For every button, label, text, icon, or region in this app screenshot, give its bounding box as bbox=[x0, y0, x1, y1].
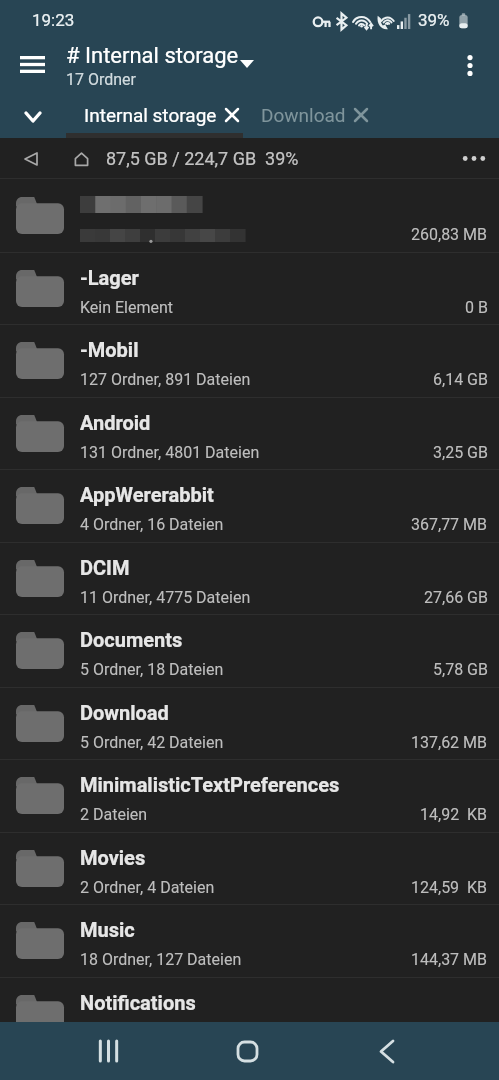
staticText: Download bbox=[261, 104, 346, 126]
button[interactable]: Internal storage bbox=[66, 96, 243, 138]
staticText: 18 Ordner, 127 Dateien bbox=[80, 950, 242, 969]
button[interactable]: Up one level bbox=[6, 138, 56, 179]
staticText: 137,62 MB bbox=[411, 733, 488, 752]
staticText: -Lager bbox=[80, 266, 139, 289]
button[interactable]: Android bbox=[0, 397, 499, 470]
staticText: 2 Dateien bbox=[80, 805, 148, 824]
staticText: 11 Ordner, 4775 Dateien bbox=[80, 588, 251, 607]
staticText: -Mobil bbox=[80, 338, 139, 361]
staticText: 131 Ordner, 4801 Dateien bbox=[80, 443, 260, 462]
staticText: 14,92 KB bbox=[420, 805, 488, 824]
button[interactable]: Documents bbox=[0, 614, 499, 687]
staticText: 6,14 GB bbox=[433, 370, 488, 389]
button[interactable]: Download bbox=[0, 687, 499, 760]
button[interactable]: 260,83 MB bbox=[0, 179, 499, 252]
staticText: 39% bbox=[418, 10, 450, 30]
button[interactable]: Overflow menu bbox=[449, 138, 499, 179]
button[interactable]: DCIM bbox=[0, 542, 499, 615]
staticText: # Internal storage bbox=[66, 43, 239, 69]
button[interactable]: Back bbox=[337, 1022, 437, 1080]
staticText: 0 B bbox=[465, 298, 488, 317]
button[interactable]: MinimalisticTextPreferences bbox=[0, 759, 499, 832]
staticText: Music bbox=[80, 918, 135, 941]
button[interactable]: Recent apps bbox=[58, 1022, 158, 1080]
staticText: 144,37 MB bbox=[411, 950, 488, 969]
staticText: 5,78 GB bbox=[433, 660, 488, 679]
staticText: 4 Ordner, 16 Dateien bbox=[80, 515, 224, 534]
button[interactable]: Show tab list bbox=[0, 96, 66, 138]
staticText: 367,77 MB bbox=[411, 515, 488, 534]
staticText: Internal storage bbox=[84, 104, 217, 126]
staticText: 19:23 bbox=[32, 10, 75, 30]
staticText: Download bbox=[80, 701, 169, 724]
button[interactable]: Movies bbox=[0, 832, 499, 905]
button[interactable]: AppWererabbit bbox=[0, 469, 499, 542]
staticText: 127 Ordner, 891 Dateien bbox=[80, 370, 251, 389]
button[interactable]: Notifications bbox=[0, 977, 499, 1050]
staticText: Kein Element bbox=[80, 298, 174, 317]
staticText: 1 Datei bbox=[80, 1023, 130, 1042]
staticText: 2 Ordner, 4 Dateien bbox=[80, 878, 215, 897]
staticText: 124,59 KB bbox=[411, 878, 488, 897]
staticText: 27,66 GB bbox=[424, 588, 488, 607]
staticText: DCIM bbox=[80, 556, 130, 579]
staticText: 5 Ordner, 18 Dateien bbox=[80, 660, 224, 679]
button[interactable]: Music bbox=[0, 904, 499, 977]
button[interactable]: -Mobil bbox=[0, 324, 499, 397]
button[interactable]: Navigation menu bbox=[0, 41, 66, 96]
staticText: Documents bbox=[80, 628, 183, 651]
staticText: 3,25 GB bbox=[433, 443, 488, 462]
button[interactable]: More options bbox=[441, 41, 499, 96]
staticText: 17 Ordner bbox=[66, 70, 136, 89]
staticText: Notifications bbox=[80, 991, 196, 1014]
staticText: 5 Ordner, 42 Dateien bbox=[80, 733, 224, 752]
staticText: Android bbox=[80, 411, 151, 434]
staticText: 260,83 MB bbox=[411, 225, 488, 244]
button[interactable]: Home directory bbox=[56, 138, 106, 179]
staticText: Movies bbox=[80, 846, 146, 869]
staticText: AppWererabbit bbox=[80, 483, 214, 506]
button[interactable]: -Lager bbox=[0, 252, 499, 325]
button[interactable]: Home bbox=[197, 1022, 297, 1080]
staticText: 87,5 GB / 224,7 GB 39% bbox=[106, 148, 299, 169]
button[interactable]: Download bbox=[243, 96, 383, 138]
staticText: MinimalisticTextPreferences bbox=[80, 773, 340, 796]
